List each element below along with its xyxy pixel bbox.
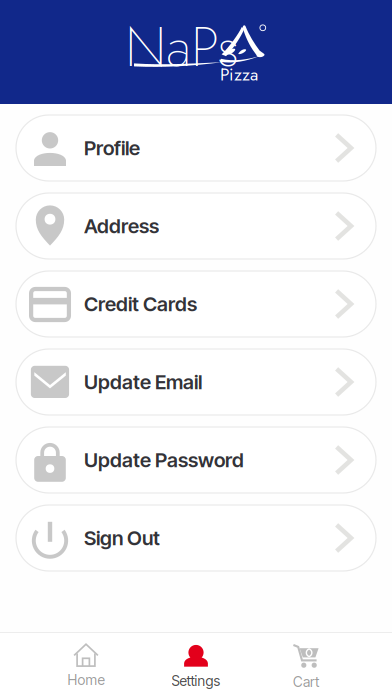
staticText: Profile bbox=[84, 136, 140, 160]
button[interactable]: Sign Out bbox=[16, 505, 376, 571]
button[interactable]: Credit Cards bbox=[16, 271, 376, 337]
staticText: Credit Cards bbox=[84, 292, 197, 316]
button[interactable]: Address bbox=[16, 193, 376, 259]
staticText: Pizza bbox=[220, 62, 258, 87]
staticText: Update Email bbox=[84, 370, 202, 394]
button[interactable]: Settings bbox=[141, 633, 251, 696]
staticText: Home bbox=[67, 671, 104, 688]
button[interactable]: Cart bbox=[251, 633, 361, 696]
button[interactable]: Profile bbox=[16, 115, 376, 181]
button[interactable]: Update Password bbox=[16, 427, 376, 493]
button[interactable]: Home bbox=[31, 633, 141, 696]
staticText: NaPs bbox=[125, 6, 240, 87]
staticText: Address bbox=[84, 214, 159, 238]
staticText: Update Password bbox=[84, 448, 244, 472]
button[interactable]: Update Email bbox=[16, 349, 376, 415]
staticText: Sign Out bbox=[84, 526, 160, 550]
staticText: Cart bbox=[293, 673, 319, 690]
staticText: Settings bbox=[171, 672, 220, 689]
